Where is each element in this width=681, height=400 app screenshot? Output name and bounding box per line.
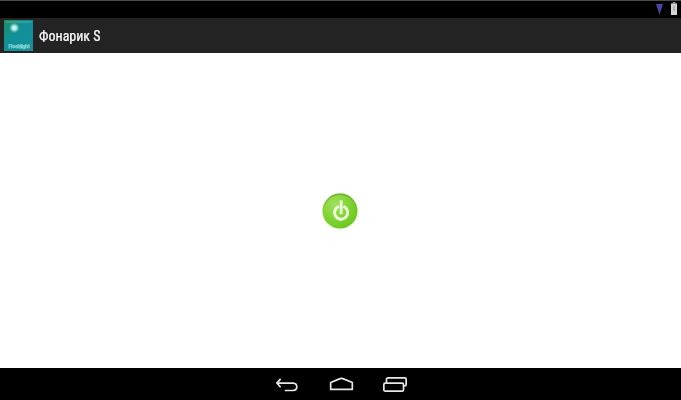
button[interactable]: Turn flashlight on [321,192,359,230]
button[interactable]: Recent apps [373,368,417,400]
staticText: Flashlight [8,42,30,49]
button[interactable]: Back [265,368,309,400]
staticText: Фонарик S [39,28,101,44]
button[interactable]: Flashlight [0,18,681,53]
button[interactable]: Home [319,368,363,400]
